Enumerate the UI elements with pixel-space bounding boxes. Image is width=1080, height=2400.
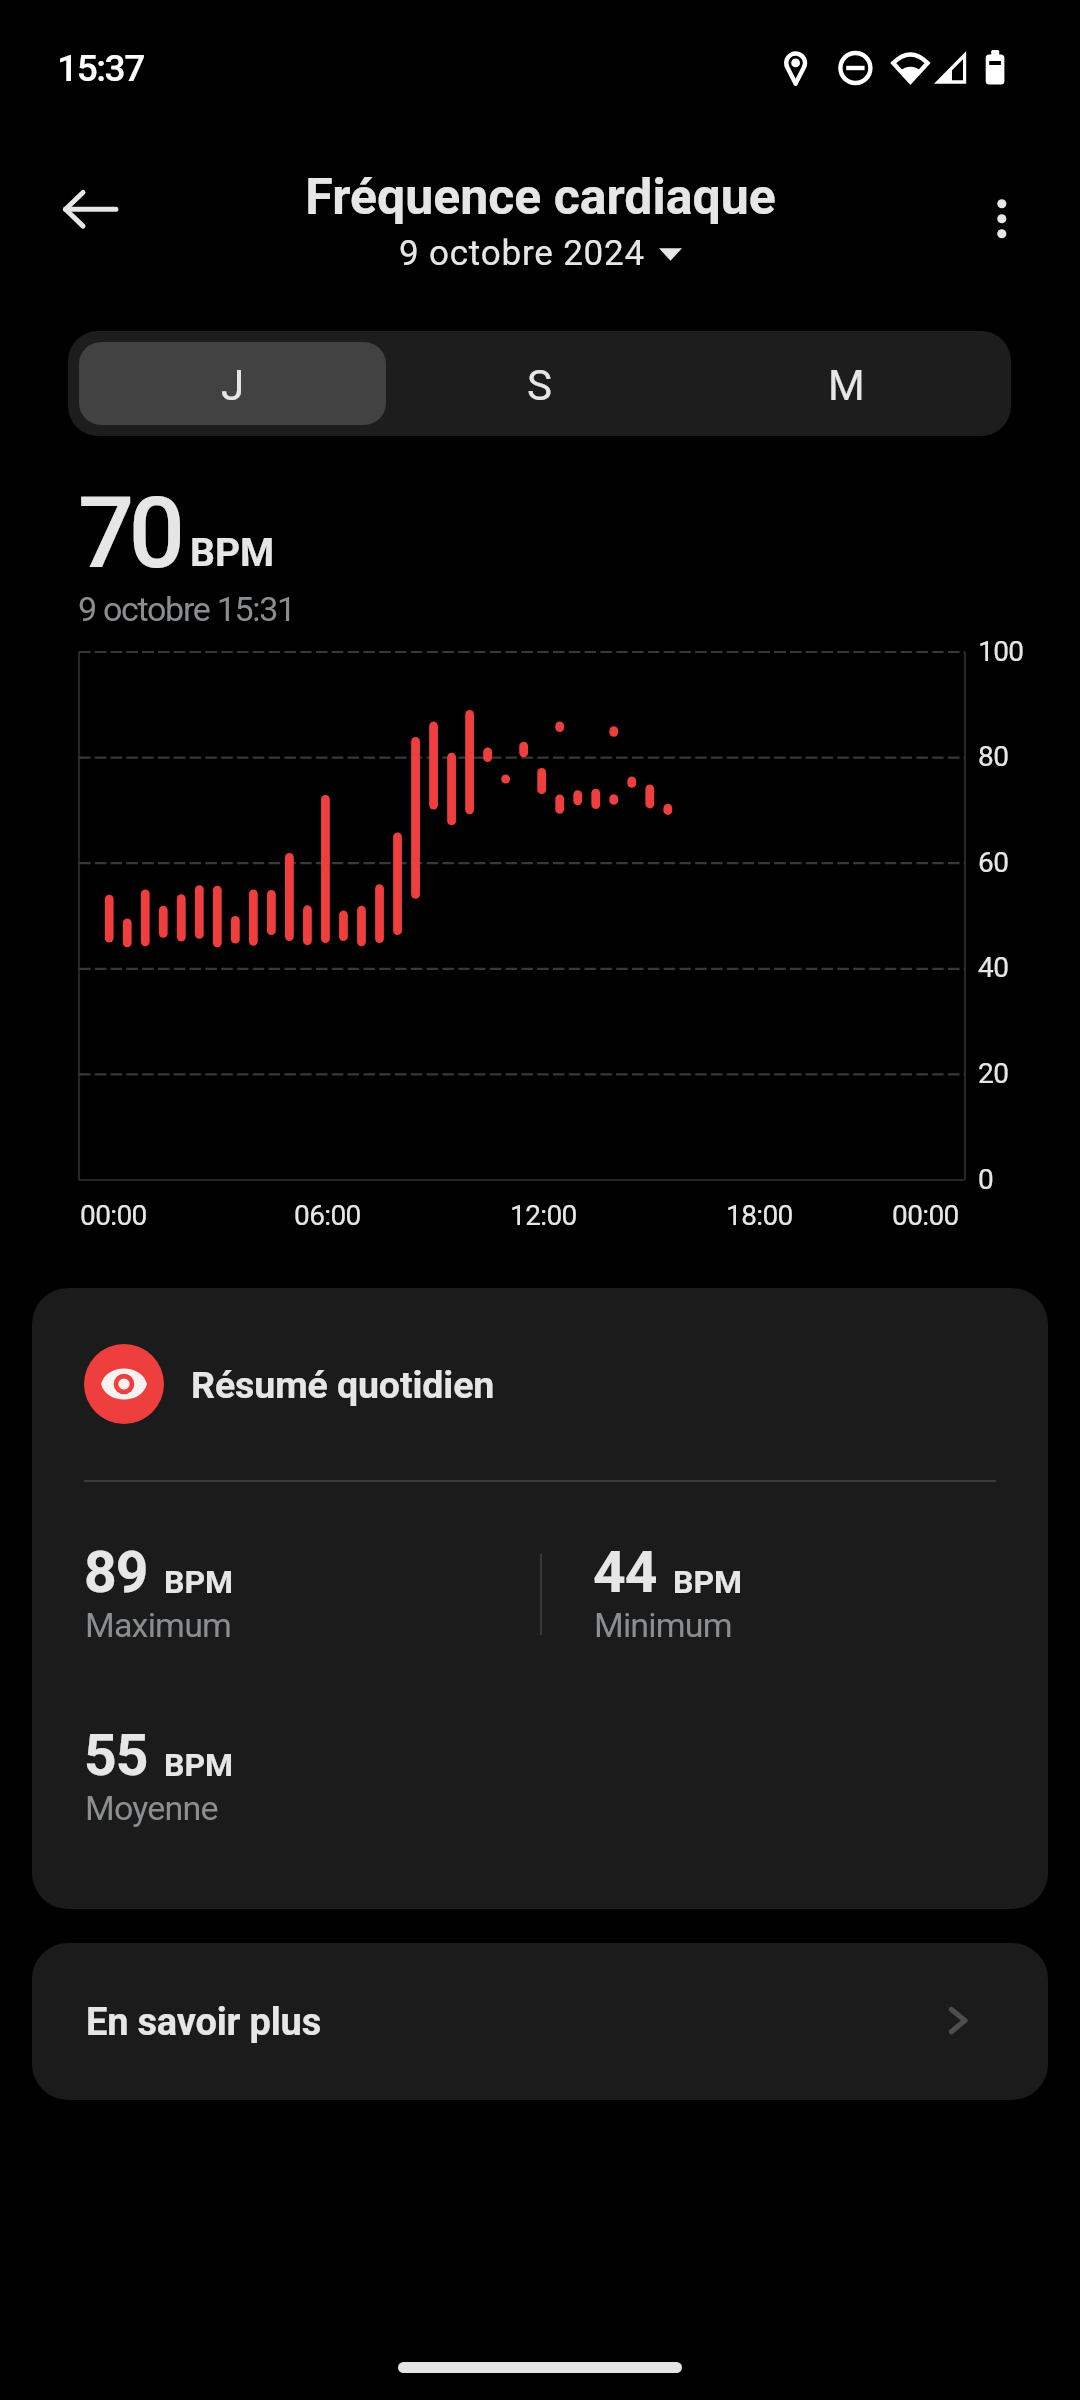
staticText: Minimum xyxy=(594,1605,732,1645)
staticText: BPM xyxy=(164,1563,234,1601)
staticText: BPM xyxy=(164,1746,234,1784)
staticText: 9 octobre 2024 xyxy=(399,233,646,274)
staticText: 9 octobre 15:31 xyxy=(78,589,295,629)
staticText: BPM xyxy=(190,530,275,576)
button[interactable]: Résumé quotidien xyxy=(32,1288,1048,1909)
staticText: Fréquence cardiaque xyxy=(305,168,776,227)
staticText: En savoir plus xyxy=(86,2000,321,2045)
staticText: 0 xyxy=(978,1163,994,1196)
staticText: Moyenne xyxy=(85,1788,218,1828)
button[interactable]: Back xyxy=(38,157,143,262)
staticText: 70 xyxy=(78,475,180,591)
staticText: 00:00 xyxy=(892,1199,959,1232)
staticText: 00:00 xyxy=(80,1199,147,1232)
staticText: 18:00 xyxy=(726,1199,793,1232)
staticText: 60 xyxy=(978,846,1009,879)
staticText: Maximum xyxy=(85,1605,232,1645)
staticText: S xyxy=(527,361,552,410)
staticText: 06:00 xyxy=(294,1199,361,1232)
staticText: 12:00 xyxy=(510,1199,577,1232)
button[interactable]: J xyxy=(79,342,386,425)
staticText: J xyxy=(221,361,245,410)
staticText: 80 xyxy=(978,740,1009,773)
staticText: 20 xyxy=(978,1057,1009,1090)
button[interactable]: M xyxy=(693,342,1000,425)
staticText: BPM xyxy=(673,1563,743,1601)
staticText: 100 xyxy=(978,635,1024,668)
staticText: 15:37 xyxy=(57,47,144,90)
staticText: 89 xyxy=(84,1539,148,1606)
staticText: 44 xyxy=(593,1539,657,1606)
button[interactable]: En savoir plus xyxy=(32,1943,1048,2100)
staticText: 55 xyxy=(84,1722,148,1789)
staticText: 40 xyxy=(978,951,1009,984)
staticText: M xyxy=(828,361,865,410)
staticText: Résumé quotidien xyxy=(191,1363,495,1407)
button[interactable]: More options xyxy=(952,157,1052,262)
button[interactable]: S xyxy=(386,342,693,425)
button[interactable]: 9 octobre 2024 xyxy=(399,233,682,274)
